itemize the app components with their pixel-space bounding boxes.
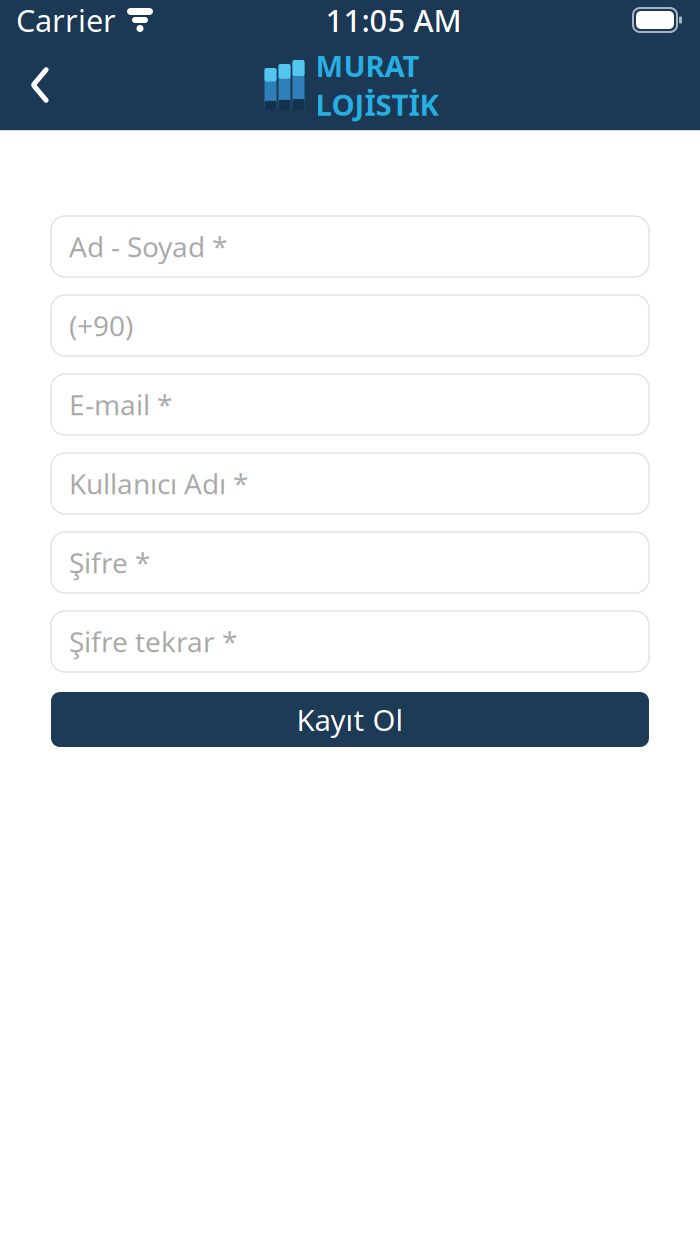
button[interactable]: E-mail * xyxy=(51,374,649,435)
staticText: MURAT xyxy=(315,46,419,85)
button[interactable]: Kullanıcı Adı * xyxy=(51,453,649,514)
button[interactable]: Ad - Soyad * xyxy=(51,216,649,277)
button[interactable]: (+90) xyxy=(51,295,649,356)
staticText: (+90) xyxy=(69,307,133,344)
button[interactable]: Şifre * xyxy=(51,532,649,593)
staticText: E-mail * xyxy=(69,386,172,423)
staticText: 11:05 AM xyxy=(325,0,461,40)
staticText: Şifre tekrar * xyxy=(69,623,237,660)
button[interactable]: Şifre tekrar * xyxy=(51,611,649,672)
staticText: Ad - Soyad * xyxy=(69,228,227,265)
staticText: Kayıt Ol xyxy=(296,700,403,739)
staticText: Carrier xyxy=(16,0,116,40)
staticText: Kullanıcı Adı * xyxy=(69,465,248,502)
button[interactable]: Back xyxy=(8,53,72,117)
button[interactable]: Kayıt Ol xyxy=(51,692,649,747)
staticText: LOJİSTİK xyxy=(315,85,438,124)
staticText: Şifre * xyxy=(69,544,150,581)
